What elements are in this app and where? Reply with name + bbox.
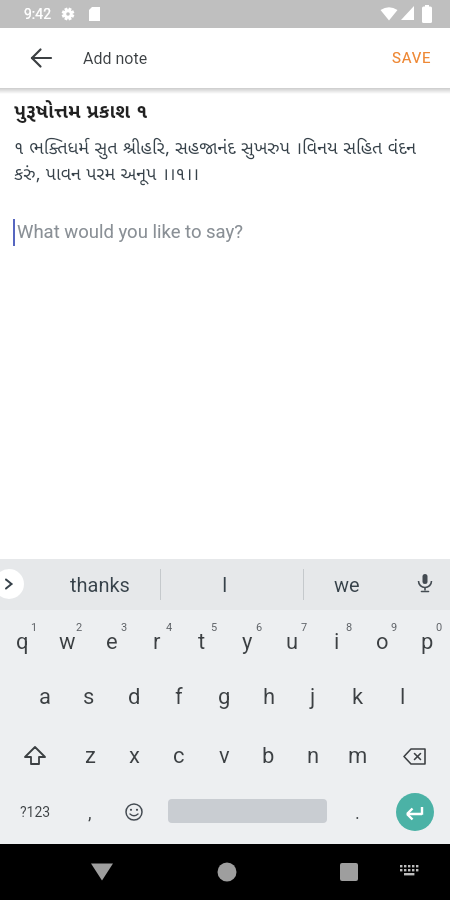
- button[interactable]: b: [246, 729, 290, 783]
- button[interactable]: we: [297, 564, 397, 604]
- staticText: i: [334, 629, 340, 655]
- button[interactable]: c: [157, 729, 201, 783]
- staticText: 2: [76, 621, 83, 634]
- button[interactable]: s: [67, 670, 111, 724]
- staticText: p: [421, 629, 434, 655]
- button[interactable]: n: [291, 729, 335, 783]
- staticText: e: [106, 629, 118, 655]
- staticText: s: [83, 684, 95, 710]
- button[interactable]: [0, 569, 24, 599]
- staticText: ૧ ભક્તિધર્મ સુત શ્રીહરિ, સહજાનંદ સુખરુપ …: [14, 135, 417, 185]
- staticText: m: [348, 743, 368, 769]
- staticText: we: [334, 573, 360, 596]
- staticText: 5: [211, 621, 218, 634]
- staticText: I: [222, 573, 228, 596]
- staticText: x: [129, 743, 140, 769]
- button[interactable]: p: [405, 615, 449, 669]
- staticText: .: [355, 802, 360, 823]
- staticText: o: [376, 629, 389, 655]
- button[interactable]: e: [90, 615, 134, 669]
- staticText: r: [153, 629, 161, 655]
- staticText: t: [198, 629, 206, 655]
- staticText: thanks: [70, 573, 130, 596]
- staticText: c: [173, 743, 185, 769]
- staticText: k: [352, 684, 364, 710]
- staticText: 3: [121, 621, 128, 634]
- button[interactable]: i: [315, 615, 359, 669]
- staticText: Add note: [83, 49, 148, 68]
- staticText: l: [400, 684, 406, 710]
- staticText: ,: [88, 802, 92, 823]
- button[interactable]: f: [157, 670, 201, 724]
- button[interactable]: thanks: [50, 564, 150, 604]
- button[interactable]: r: [135, 615, 179, 669]
- button[interactable]: SAVE: [382, 40, 442, 76]
- staticText: 4: [166, 621, 173, 634]
- button[interactable]: q: [0, 615, 44, 669]
- staticText: q: [16, 629, 29, 655]
- staticText: 7: [301, 621, 308, 634]
- button[interactable]: [396, 793, 434, 831]
- staticText: 9:42: [24, 6, 51, 22]
- staticText: d: [128, 684, 141, 710]
- staticText: v: [219, 743, 230, 769]
- button[interactable]: k: [336, 670, 380, 724]
- staticText: 9: [391, 621, 398, 634]
- staticText: b: [262, 743, 275, 769]
- button[interactable]: a: [23, 670, 67, 724]
- button[interactable]: w: [45, 615, 89, 669]
- button[interactable]: [390, 852, 430, 892]
- staticText: 0: [436, 621, 443, 634]
- button[interactable]: [393, 734, 437, 778]
- staticText: a: [39, 684, 51, 710]
- staticText: SAVE: [392, 49, 432, 67]
- button[interactable]: [327, 850, 371, 894]
- button[interactable]: x: [112, 729, 156, 783]
- staticText: પુરૂષોત્તમ પ્રકાશ ૧: [14, 97, 148, 124]
- staticText: 6: [256, 621, 263, 634]
- button[interactable]: y: [225, 615, 269, 669]
- button[interactable]: h: [247, 670, 291, 724]
- staticText: f: [175, 684, 183, 710]
- staticText: w: [59, 629, 76, 655]
- staticText: g: [218, 684, 231, 710]
- button[interactable]: m: [336, 729, 380, 783]
- button[interactable]: j: [291, 670, 335, 724]
- button[interactable]: [13, 734, 57, 778]
- staticText: u: [286, 629, 299, 655]
- button[interactable]: [17, 34, 65, 82]
- button[interactable]: v: [202, 729, 246, 783]
- button[interactable]: [119, 797, 149, 827]
- staticText: y: [242, 629, 253, 655]
- staticText: z: [85, 743, 96, 769]
- staticText: 8: [346, 621, 353, 634]
- staticText: j: [310, 684, 316, 710]
- button[interactable]: d: [112, 670, 156, 724]
- staticText: n: [307, 743, 320, 769]
- button[interactable]: [80, 850, 124, 894]
- button[interactable]: I: [175, 564, 275, 604]
- staticText: What would you like to say?: [17, 221, 244, 243]
- staticText: h: [263, 684, 276, 710]
- button[interactable]: l: [381, 670, 425, 724]
- button[interactable]: g: [202, 670, 246, 724]
- button[interactable]: t: [180, 615, 224, 669]
- button[interactable]: z: [68, 729, 112, 783]
- button[interactable]: u: [270, 615, 314, 669]
- button[interactable]: [205, 850, 249, 894]
- button[interactable]: [410, 569, 440, 599]
- button[interactable]: o: [360, 615, 404, 669]
- staticText: 1: [31, 621, 38, 634]
- staticText: ?123: [20, 804, 51, 820]
